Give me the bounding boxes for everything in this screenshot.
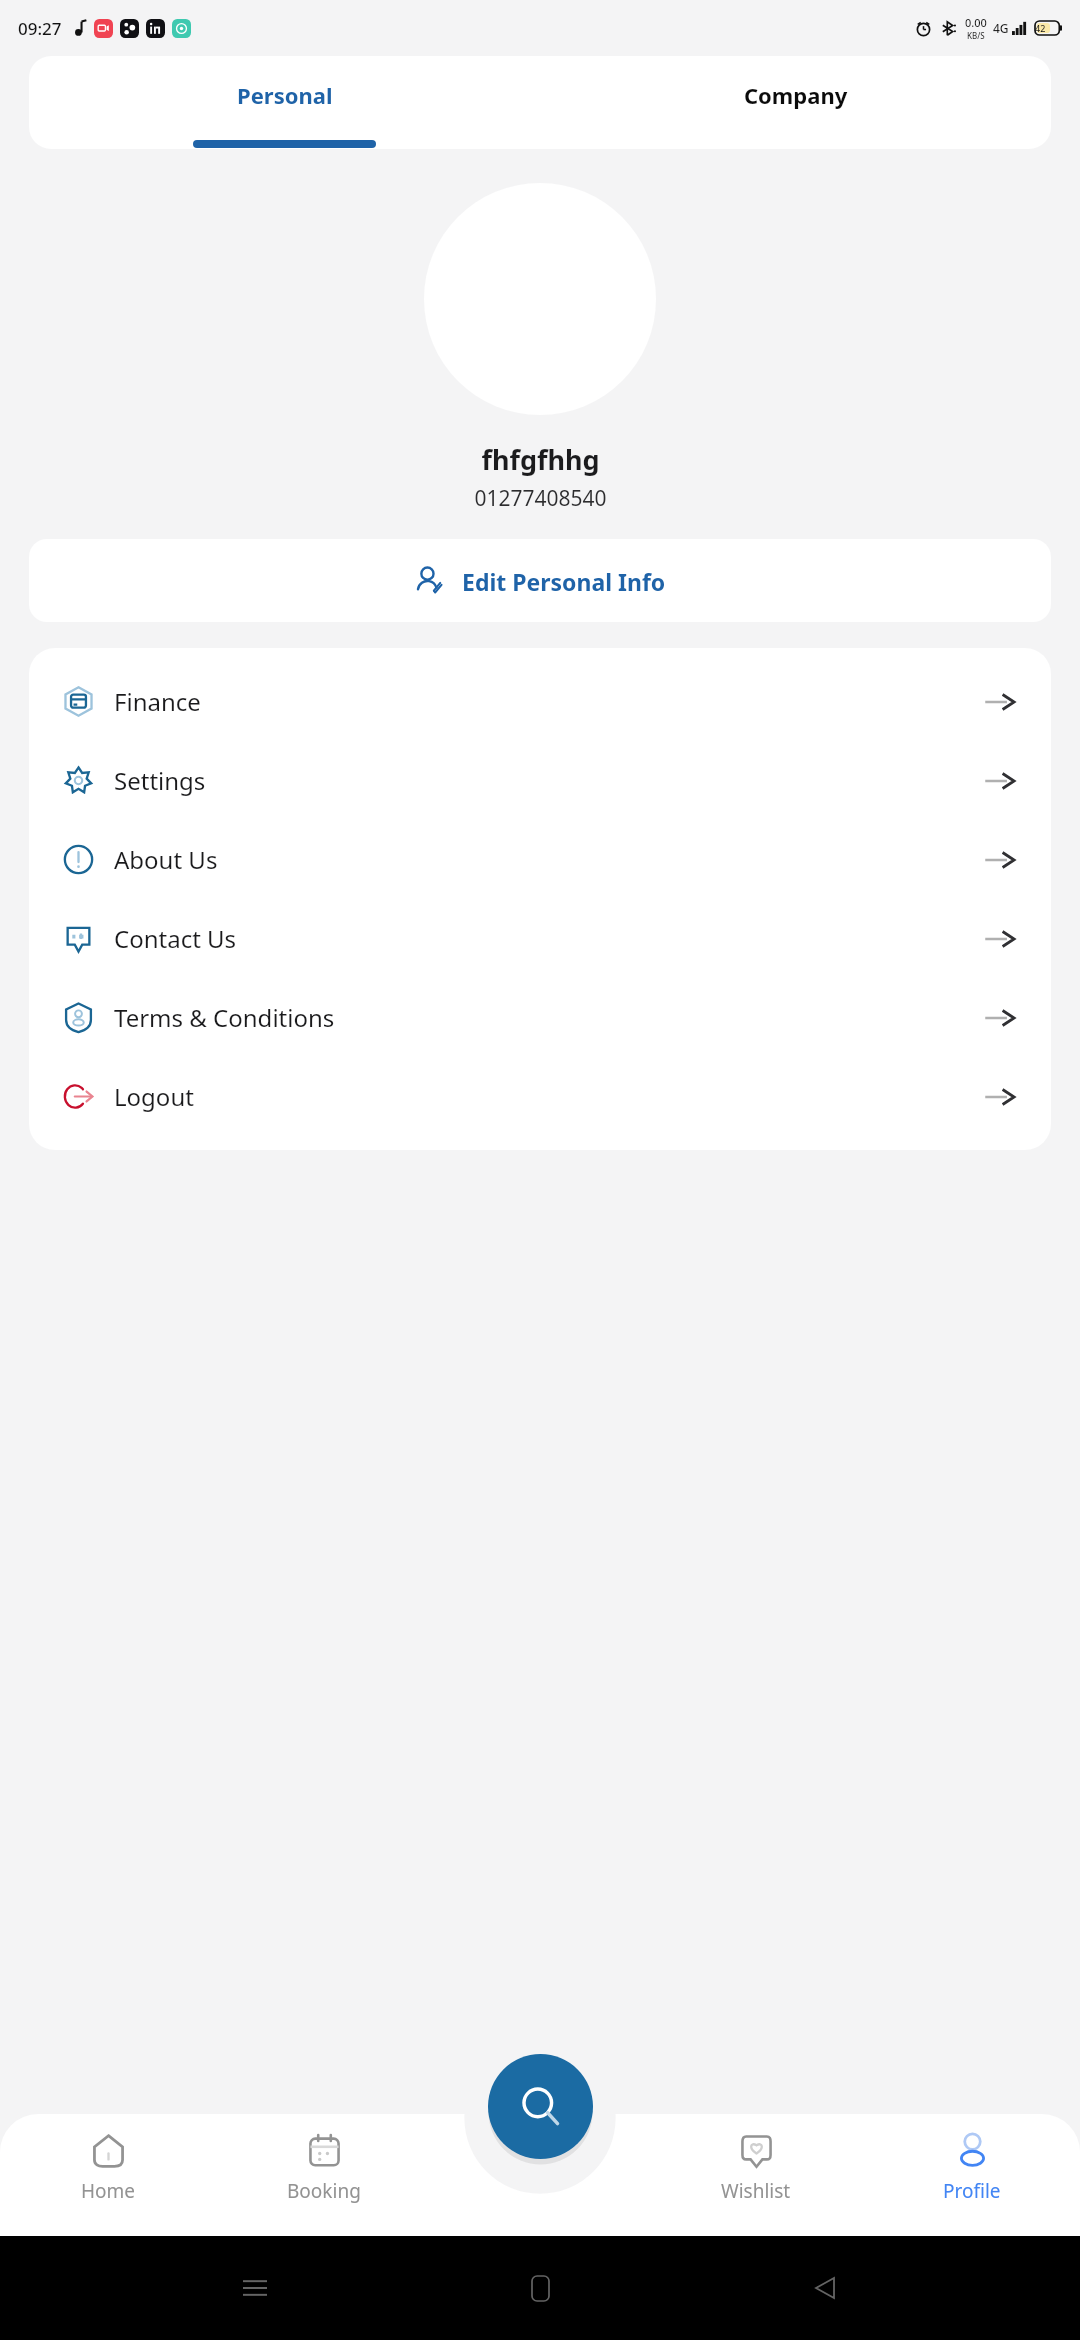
button[interactable]: Settings: [29, 741, 1051, 820]
button[interactable]: Profile: [864, 2114, 1080, 2236]
staticText: Settings: [114, 764, 206, 797]
staticText: KB/S: [967, 30, 985, 41]
staticText: Finance: [114, 685, 201, 718]
staticText: Profile: [943, 2178, 1001, 2204]
button[interactable]: Back: [795, 2258, 855, 2318]
staticText: Home: [81, 2178, 136, 2204]
button[interactable]: Logout: [29, 1057, 1051, 1136]
staticText: Logout: [114, 1080, 194, 1113]
button[interactable]: Finance: [29, 662, 1051, 741]
staticText: 09:27: [18, 17, 62, 40]
staticText: Company: [744, 80, 848, 110]
staticText: Booking: [287, 2178, 361, 2204]
staticText: About Us: [114, 843, 218, 876]
staticText: Terms & Conditions: [114, 1001, 335, 1034]
button[interactable]: Personal: [29, 56, 540, 149]
button[interactable]: Wishlist: [648, 2114, 864, 2236]
staticText: fhfgfhhg: [481, 441, 600, 478]
staticText: Wishlist: [721, 2178, 791, 2204]
button[interactable]: About Us: [29, 820, 1051, 899]
button[interactable]: Home: [0, 2114, 216, 2236]
button[interactable]: Company: [540, 56, 1051, 149]
staticText: 0.00: [965, 15, 987, 30]
button[interactable]: Recents: [225, 2258, 285, 2318]
staticText: Contact Us: [114, 922, 237, 955]
button[interactable]: Booking: [216, 2114, 432, 2236]
staticText: 4G: [993, 20, 1009, 36]
staticText: Personal: [237, 80, 333, 110]
button[interactable]: [424, 183, 656, 415]
staticText: Edit Personal Info: [462, 566, 666, 597]
button[interactable]: Home: [510, 2258, 570, 2318]
staticText: 01277408540: [474, 484, 607, 513]
button[interactable]: Terms & Conditions: [29, 978, 1051, 1057]
staticText: 42: [1035, 22, 1046, 34]
button[interactable]: Contact Us: [29, 899, 1051, 978]
button[interactable]: Edit Personal Info: [29, 539, 1051, 622]
button[interactable]: Search: [488, 2054, 593, 2159]
